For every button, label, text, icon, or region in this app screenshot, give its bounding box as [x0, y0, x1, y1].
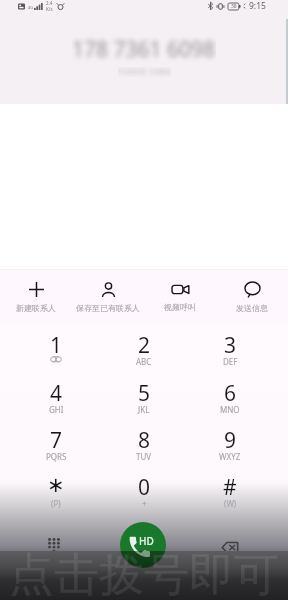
staticText: 保存至已有联系人 [76, 303, 140, 313]
button[interactable]: 6 [187, 370, 273, 416]
button[interactable]: # [187, 464, 273, 510]
staticText: HD [139, 534, 154, 548]
button[interactable]: 8 [101, 417, 187, 463]
staticText: 9:15 [249, 0, 266, 12]
button[interactable]: Dialpad [39, 531, 69, 561]
staticText: 178 7361 6098 [72, 35, 216, 64]
staticText: 发送信息 [236, 303, 268, 313]
staticText: JKL [138, 404, 150, 415]
button[interactable]: 4 [13, 370, 99, 416]
button[interactable]: 5 [101, 370, 187, 416]
staticText: (P) [51, 498, 61, 509]
staticText: 38 [231, 3, 237, 10]
staticText: (W) [224, 498, 237, 509]
staticText: GHI [49, 404, 64, 415]
button[interactable]: 发送信息 [216, 270, 288, 325]
staticText: 5 [138, 379, 151, 408]
button[interactable]: 1 [13, 322, 99, 368]
button[interactable]: 0 [101, 464, 187, 510]
staticText: DEF [223, 356, 238, 367]
staticText: # [223, 473, 237, 502]
staticText: 2 [138, 331, 151, 360]
button[interactable]: 新建联系人 [0, 270, 72, 325]
staticText: 4 [50, 379, 63, 408]
staticText: 2.4 [46, 0, 53, 6]
button[interactable]: 2 [101, 322, 187, 368]
button[interactable]: Call [120, 522, 166, 568]
button[interactable]: Delete [215, 532, 245, 562]
staticText: 4G [28, 5, 34, 10]
staticText: 8 [138, 426, 151, 455]
staticText: 6 [224, 379, 237, 408]
staticText: MNO [220, 404, 240, 415]
staticText: 7 [50, 426, 63, 455]
staticText: ABC [136, 356, 152, 367]
staticText: 1 [50, 331, 63, 360]
button[interactable]: 7 [13, 417, 99, 463]
button[interactable]: ∗ [13, 464, 99, 510]
staticText: ∗ [47, 473, 65, 497]
staticText: TUV [136, 451, 152, 462]
staticText: 3 [224, 331, 237, 360]
button[interactable]: 9 [187, 417, 273, 463]
button[interactable]: 保存至已有联系人 [72, 270, 144, 325]
staticText: 点击拨号即可 [9, 547, 279, 596]
staticText: 中国联通 归属地 [118, 67, 171, 77]
staticText: 0 [138, 473, 151, 502]
button[interactable]: 3 [187, 322, 273, 368]
staticText: 9 [224, 426, 237, 455]
staticText: PQRS [46, 451, 67, 462]
staticText: K/s [46, 6, 53, 12]
button[interactable]: 视频呼叫 [144, 270, 216, 325]
staticText: WXYZ [219, 451, 241, 462]
staticText: 新建联系人 [16, 303, 56, 313]
staticText: 视频呼叫 [164, 302, 196, 312]
staticText: + [142, 498, 147, 509]
